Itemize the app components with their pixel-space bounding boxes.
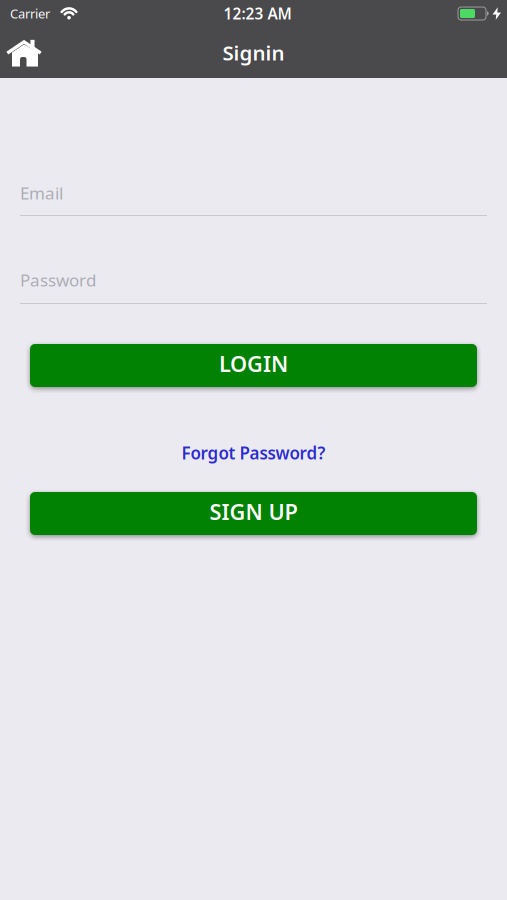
staticText: Email [20,181,63,205]
staticText: SIGN UP [209,497,297,526]
staticText: LOGIN [219,349,288,378]
staticText: Forgot Password? [181,441,325,465]
button[interactable] [0,27,41,77]
button[interactable]: Forgot Password? [181,441,325,465]
button[interactable]: LOGIN [30,344,477,387]
staticText: 12:23 AM [223,3,291,24]
staticText: Carrier [10,5,50,22]
staticText: Password [20,268,96,292]
staticText: Signin [222,38,284,66]
button[interactable]: SIGN UP [30,492,477,535]
